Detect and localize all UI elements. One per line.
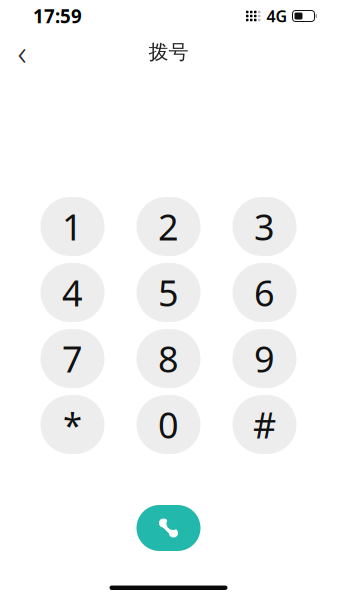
button[interactable]: 8 (136, 329, 200, 388)
button[interactable]: 5 (136, 263, 200, 322)
staticText: 7 (62, 335, 83, 382)
button[interactable]: 9 (232, 329, 296, 388)
staticText: * (63, 401, 82, 447)
button[interactable]: Back (0, 30, 44, 74)
staticText: # (253, 401, 276, 448)
staticText: 4G (266, 5, 287, 27)
staticText: 5 (158, 269, 179, 316)
staticText: 3 (254, 203, 275, 250)
staticText: 0 (158, 401, 179, 448)
staticText: 拨号 (148, 40, 188, 64)
staticText: ‹ (17, 29, 26, 75)
button[interactable]: Call (136, 505, 200, 551)
staticText: 4 (62, 269, 83, 316)
button[interactable]: 6 (232, 263, 296, 322)
button[interactable]: 2 (136, 197, 200, 256)
staticText: 8 (158, 335, 179, 382)
button[interactable]: 3 (232, 197, 296, 256)
staticText: 9 (254, 335, 275, 382)
button[interactable]: 1 (40, 197, 104, 256)
staticText: 6 (254, 269, 275, 316)
staticText: 1 (62, 203, 83, 250)
button[interactable]: * (40, 395, 104, 454)
staticText: 17:59 (33, 4, 82, 28)
button[interactable]: 7 (40, 329, 104, 388)
button[interactable]: 0 (136, 395, 200, 454)
staticText: 2 (158, 203, 179, 250)
button[interactable]: 4 (40, 263, 104, 322)
button[interactable]: # (232, 395, 296, 454)
